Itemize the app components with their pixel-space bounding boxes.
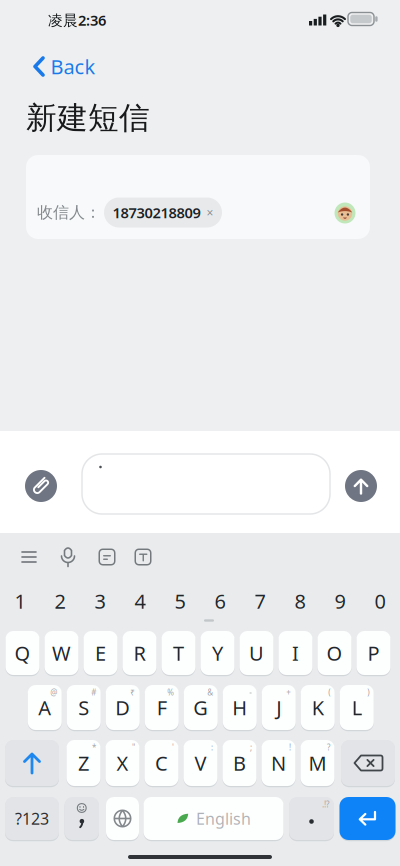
button[interactable]: X: [105, 740, 139, 786]
staticText: G: [193, 694, 208, 721]
staticText: .!?: [322, 799, 329, 810]
button[interactable]: Contact avatar: [334, 202, 355, 223]
button[interactable]: Clipboard: [99, 549, 115, 565]
button[interactable]: 9: [322, 585, 358, 617]
button[interactable]: N: [261, 740, 295, 786]
button[interactable]: G: [184, 685, 218, 730]
button[interactable]: D: [106, 685, 140, 730]
button[interactable]: Keyboard menu: [20, 546, 38, 568]
staticText: ?123: [15, 808, 49, 829]
staticText: ₹: [130, 687, 135, 698]
button[interactable]: 18730218809: [104, 197, 222, 227]
staticText: %: [167, 687, 174, 698]
button[interactable]: 2: [42, 585, 78, 617]
button[interactable]: M: [300, 740, 334, 786]
button[interactable]: Q: [5, 631, 39, 675]
button[interactable]: C: [144, 740, 178, 786]
staticText: N: [271, 750, 286, 776]
staticText: ": [132, 742, 135, 753]
button[interactable]: J: [262, 685, 296, 730]
staticText: J: [276, 694, 281, 721]
button[interactable]: O: [317, 631, 351, 675]
button[interactable]: Send: [345, 470, 377, 502]
button[interactable]: Y: [200, 631, 234, 675]
button[interactable]: ?123: [5, 797, 59, 840]
button[interactable]: Text editor: [135, 549, 151, 565]
button[interactable]: 8: [282, 585, 318, 617]
staticText: 5: [174, 588, 185, 614]
staticText: Y: [212, 640, 223, 666]
button[interactable]: W: [44, 631, 78, 675]
staticText: 1: [14, 588, 25, 614]
staticText: ): [367, 687, 369, 698]
button[interactable]: T: [161, 631, 195, 675]
button[interactable]: 6: [202, 585, 238, 617]
staticText: V: [194, 750, 206, 776]
staticText: E: [95, 640, 106, 666]
staticText: U: [249, 640, 264, 666]
staticText: 8: [294, 588, 305, 614]
button[interactable]: F: [145, 685, 179, 730]
button[interactable]: Z: [66, 740, 100, 786]
button[interactable]: I: [278, 631, 312, 675]
button[interactable]: P: [356, 631, 390, 675]
staticText: F: [157, 694, 167, 721]
button[interactable]: 1: [2, 585, 38, 617]
button[interactable]: K: [301, 685, 335, 730]
button[interactable]: L: [340, 685, 374, 730]
button[interactable]: Comma: [64, 797, 99, 840]
button[interactable]: B: [222, 740, 256, 786]
button[interactable]: E: [83, 631, 117, 675]
button[interactable]: Period: [289, 797, 334, 840]
button[interactable]: Voice input: [57, 545, 79, 567]
staticText: 18730218809: [112, 203, 200, 222]
staticText: 7: [254, 588, 265, 614]
button[interactable]: Delete: [341, 740, 395, 786]
staticText: ×: [206, 204, 213, 220]
staticText: M: [308, 750, 326, 776]
button[interactable]: U: [239, 631, 273, 675]
staticText: (: [328, 687, 330, 698]
button[interactable]: 4: [122, 585, 158, 617]
button[interactable]: Attach: [25, 470, 57, 502]
button[interactable]: H: [223, 685, 257, 730]
staticText: +: [286, 687, 291, 698]
staticText: ?: [327, 742, 330, 753]
staticText: I: [292, 640, 299, 666]
button[interactable]: Space: [143, 797, 283, 840]
button[interactable]: Shift: [5, 740, 59, 786]
staticText: 新建短信: [26, 99, 150, 137]
staticText: @: [50, 687, 57, 698]
button[interactable]: V: [183, 740, 217, 786]
staticText: 凌晨2:36: [48, 10, 106, 30]
staticText: D: [115, 694, 130, 721]
button[interactable]: A: [28, 685, 62, 730]
button[interactable]: Return: [339, 797, 395, 840]
staticText: Z: [78, 750, 89, 776]
button[interactable]: Message text field: [82, 454, 330, 514]
staticText: -: [249, 687, 252, 698]
staticText: :: [211, 742, 213, 753]
staticText: B: [233, 750, 246, 776]
staticText: 9: [334, 588, 345, 614]
button[interactable]: 0: [362, 585, 398, 617]
button[interactable]: 3: [82, 585, 118, 617]
staticText: ;: [250, 742, 252, 753]
staticText: 收信人：: [37, 203, 101, 222]
staticText: #: [91, 687, 96, 698]
staticText: R: [133, 640, 145, 666]
staticText: 6: [214, 588, 225, 614]
button[interactable]: S: [67, 685, 101, 730]
staticText: A: [38, 694, 51, 721]
button[interactable]: R: [122, 631, 156, 675]
staticText: H: [232, 694, 247, 721]
staticText: *: [92, 742, 96, 753]
button[interactable]: Back: [32, 53, 95, 80]
button[interactable]: 7: [242, 585, 278, 617]
staticText: X: [116, 750, 128, 776]
button[interactable]: Switch keyboard: [106, 797, 139, 840]
staticText: 4: [134, 588, 145, 614]
staticText: W: [52, 640, 71, 666]
button[interactable]: 5: [162, 585, 198, 617]
staticText: 0: [374, 588, 385, 614]
